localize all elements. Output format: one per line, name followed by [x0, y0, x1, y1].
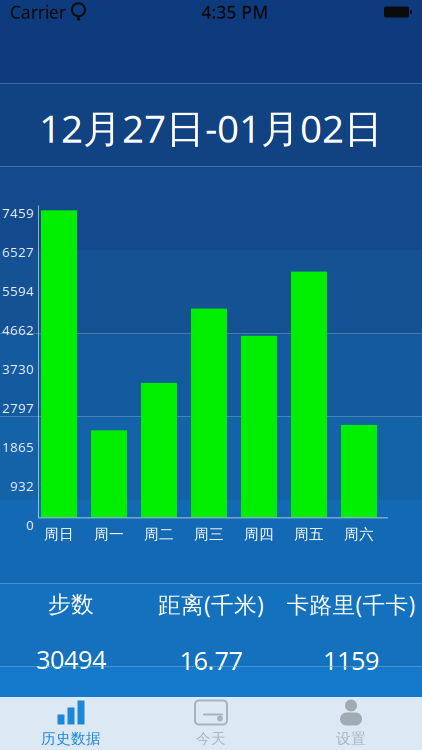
- staticText: 周二: [144, 525, 174, 543]
- button[interactable]: 历史数据: [1, 697, 141, 750]
- button[interactable]: 今天: [141, 697, 281, 750]
- staticText: 卡路里(千卡): [286, 589, 415, 619]
- staticText: 6527: [2, 243, 34, 261]
- staticText: 周三: [194, 525, 224, 543]
- staticText: 932: [10, 477, 34, 495]
- staticText: 4662: [2, 321, 34, 339]
- staticText: Carrier: [10, 0, 66, 23]
- staticText: 3730: [2, 360, 34, 378]
- button[interactable]: 设置: [281, 697, 421, 750]
- staticText: 今天: [196, 729, 226, 747]
- staticText: 周五: [294, 525, 324, 543]
- staticText: 周一: [94, 525, 124, 543]
- staticText: 12月27日-01月02日: [39, 102, 383, 153]
- staticText: 历史数据: [41, 729, 101, 747]
- staticText: 距离(千米): [158, 589, 264, 619]
- staticText: 2797: [2, 399, 34, 417]
- staticText: 5594: [2, 282, 34, 300]
- staticText: 7459: [2, 204, 34, 222]
- staticText: 1865: [2, 438, 34, 456]
- staticText: 16.77: [179, 643, 242, 677]
- staticText: 设置: [336, 729, 366, 747]
- staticText: 周四: [244, 525, 274, 543]
- staticText: 周六: [344, 525, 374, 543]
- staticText: 4:35 PM: [201, 0, 268, 23]
- staticText: 1159: [323, 643, 379, 677]
- staticText: 周日: [44, 525, 74, 543]
- staticText: 步数: [48, 590, 94, 618]
- staticText: 30494: [36, 642, 106, 676]
- staticText: 0: [26, 516, 34, 534]
